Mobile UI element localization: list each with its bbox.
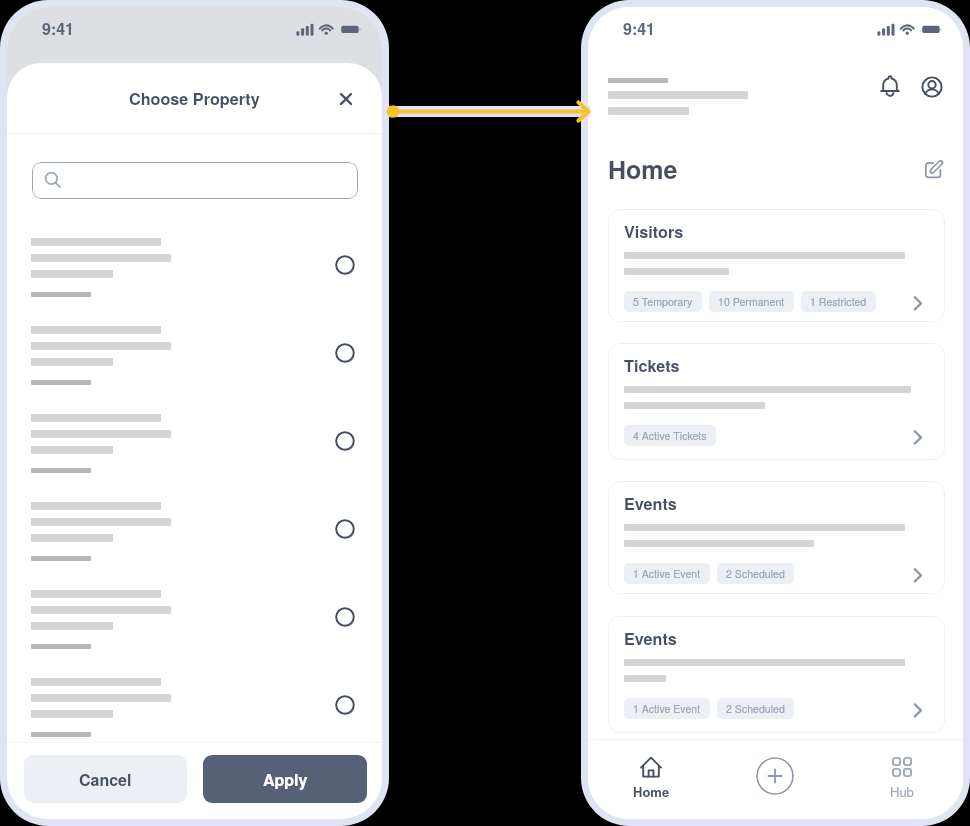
- button[interactable]: Cancel: [24, 755, 187, 803]
- staticText: 10 Permanent: [718, 294, 785, 309]
- button[interactable]: Select property: [7, 502, 382, 590]
- button[interactable]: Events: [608, 481, 945, 594]
- button[interactable]: Tickets: [608, 343, 945, 460]
- button[interactable]: Select property: [7, 238, 382, 326]
- staticText: 5 Temporary: [633, 294, 693, 309]
- staticText: Visitors: [624, 220, 684, 243]
- button[interactable]: Apply: [203, 755, 367, 803]
- staticText: Events: [624, 492, 677, 515]
- button[interactable]: Search properties: [32, 162, 358, 199]
- staticText: Hub: [890, 782, 914, 801]
- button[interactable]: Notifications: [872, 69, 908, 105]
- button[interactable]: Close: [331, 84, 361, 114]
- staticText: Home: [633, 782, 670, 801]
- button[interactable]: Select property: [7, 326, 382, 414]
- staticText: 2 Scheduled: [726, 701, 785, 716]
- button[interactable]: Home: [621, 754, 681, 801]
- button[interactable]: Edit: [920, 157, 952, 189]
- staticText: 1 Restricted: [810, 294, 867, 309]
- button[interactable]: Hub: [872, 754, 932, 801]
- button[interactable]: Select property: [7, 414, 382, 502]
- staticText: 1 Active Event: [633, 566, 701, 581]
- button[interactable]: Select property: [7, 678, 382, 766]
- staticText: Tickets: [624, 354, 680, 377]
- staticText: Cancel: [79, 768, 132, 791]
- staticText: 1 Active Event: [633, 701, 701, 716]
- staticText: Choose Property: [129, 87, 260, 110]
- button[interactable]: Select property: [7, 590, 382, 678]
- staticText: Home: [608, 151, 678, 187]
- staticText: Events: [624, 627, 677, 650]
- staticText: 9:41: [623, 17, 656, 40]
- staticText: 9:41: [42, 17, 75, 40]
- button[interactable]: Events: [608, 616, 945, 733]
- button[interactable]: Visitors: [608, 209, 945, 322]
- staticText: Apply: [263, 768, 308, 791]
- button[interactable]: Add: [756, 757, 794, 795]
- staticText: 2 Scheduled: [726, 566, 785, 581]
- staticText: 4 Active Tickets: [633, 428, 707, 443]
- button[interactable]: Account: [914, 69, 950, 105]
